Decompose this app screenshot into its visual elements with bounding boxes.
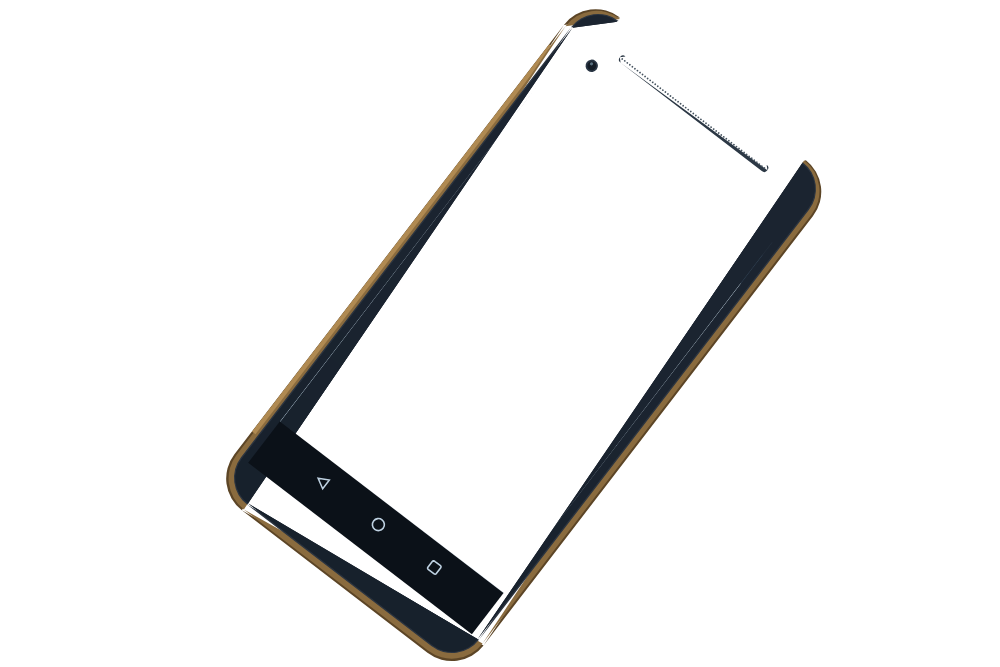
button[interactable]: Battery settings screen on phone	[0, 0, 1000, 667]
